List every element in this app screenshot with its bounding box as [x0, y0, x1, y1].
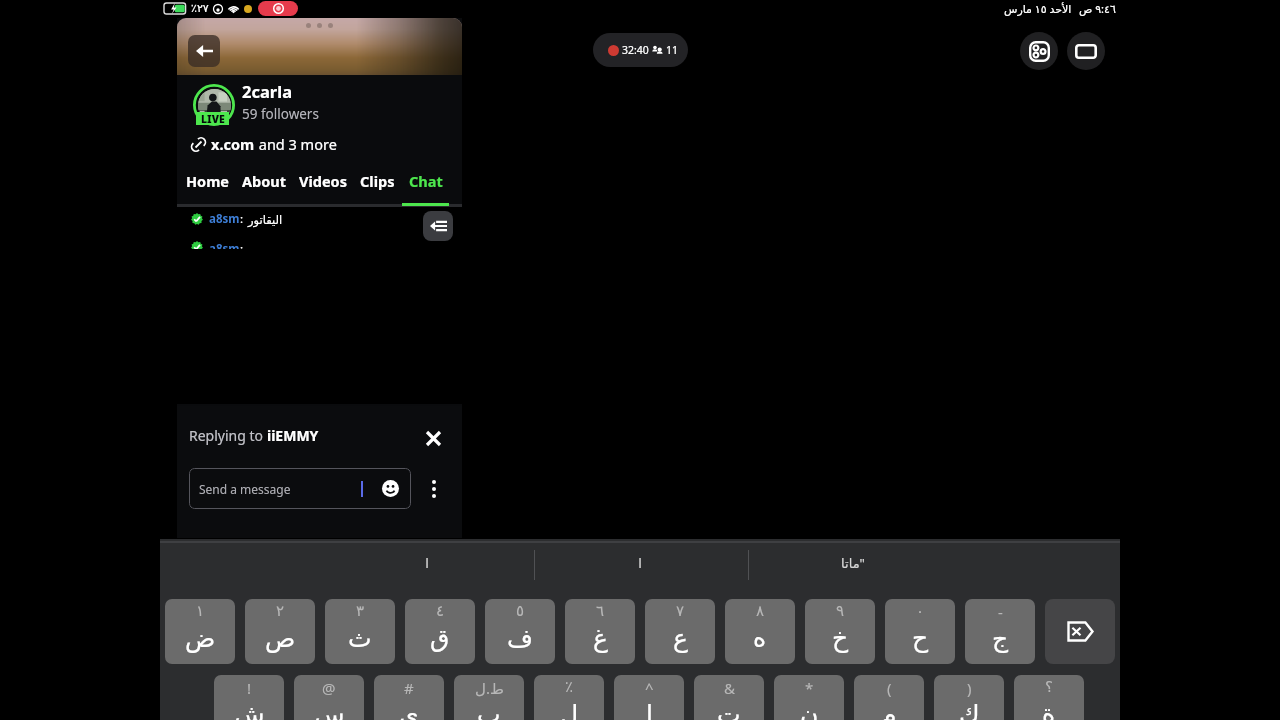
staticText: ٨ [756, 602, 765, 619]
staticText: ٥ [516, 602, 525, 619]
button[interactable]: ١ [165, 599, 235, 664]
staticText: 59 followers [242, 105, 319, 123]
staticText: ( [887, 678, 892, 698]
button[interactable]: ٨ [725, 599, 795, 664]
staticText: ن [800, 700, 819, 720]
staticText: ط.ل [475, 678, 504, 698]
staticText: a8sm [209, 211, 240, 227]
button[interactable]: ط.ل [454, 675, 524, 720]
staticText: ش [234, 700, 265, 720]
staticText: ١ [196, 602, 205, 619]
staticText: ٧ [676, 602, 685, 619]
staticText: ٣ [356, 602, 365, 619]
staticText: 2carla [242, 80, 293, 102]
button[interactable]: ٩ [805, 599, 875, 664]
button[interactable]: ٤ [405, 599, 475, 664]
staticText: خ [832, 624, 849, 653]
staticText: ك [959, 700, 980, 720]
button[interactable]: Full screen [1067, 32, 1105, 70]
staticText: LIVE [201, 112, 225, 125]
staticText: * [805, 678, 814, 698]
staticText: Home [186, 171, 229, 191]
staticText: ع [673, 624, 688, 653]
button[interactable]: ٠ [885, 599, 955, 664]
staticText: : [240, 211, 244, 227]
staticText: Send a message [199, 481, 291, 497]
button[interactable]: Chat [402, 171, 449, 206]
staticText: ٩:٤٦ ص [1079, 1, 1116, 16]
staticText: 11 [666, 43, 679, 57]
staticText: ح [912, 624, 929, 653]
button[interactable]: * [774, 675, 844, 720]
button[interactable]: More options [421, 476, 447, 502]
button[interactable]: Send a message [189, 468, 411, 509]
staticText: ٪ [565, 678, 574, 695]
button[interactable]: & [694, 675, 764, 720]
button[interactable]: ٢ [245, 599, 315, 664]
button[interactable]: ماتا" [746, 546, 959, 580]
staticText: ف [507, 624, 533, 653]
button[interactable]: Home [180, 171, 235, 206]
staticText: ٩ [836, 602, 845, 619]
button[interactable]: @ [294, 675, 364, 720]
button[interactable]: ) [934, 675, 1004, 720]
button[interactable]: ا [321, 546, 533, 580]
staticText: ماتا" [841, 554, 865, 572]
staticText: : [240, 241, 244, 249]
staticText: ة [1042, 700, 1056, 720]
button[interactable]: Clips [353, 171, 402, 206]
button[interactable]: Videos [292, 171, 353, 206]
staticText: ب [477, 700, 501, 720]
staticText: اليقاتور [248, 213, 283, 226]
staticText: ه [753, 624, 767, 653]
staticText: س [314, 700, 345, 720]
button[interactable]: ٦ [565, 599, 635, 664]
staticText: ا [646, 700, 653, 720]
staticText: ا [638, 556, 642, 571]
button[interactable]: Back [188, 35, 220, 67]
staticText: Chat [409, 171, 443, 191]
button[interactable]: ؟ [1014, 675, 1084, 720]
button[interactable]: ( [854, 675, 924, 720]
staticText: # [404, 678, 414, 698]
staticText: & [724, 678, 735, 698]
staticText: ؟ [1045, 678, 1053, 695]
button[interactable]: ^ [614, 675, 684, 720]
button[interactable]: - [965, 599, 1035, 664]
button[interactable]: ! [214, 675, 284, 720]
staticText: ) [967, 678, 972, 698]
button[interactable]: ٣ [325, 599, 395, 664]
button[interactable]: Multi window [1020, 32, 1058, 70]
staticText: ث [348, 624, 372, 653]
staticText: ^ [645, 678, 654, 698]
staticText: and 3 more [255, 134, 337, 154]
staticText: ٢ [276, 602, 285, 619]
staticText: ٦ [596, 602, 605, 619]
staticText: ٤ [436, 602, 445, 619]
staticText: غ [593, 624, 608, 653]
button[interactable]: ٧ [645, 599, 715, 664]
staticText: Videos [299, 171, 347, 191]
staticText: ل [560, 700, 579, 720]
button[interactable]: 32:40 [593, 33, 688, 67]
staticText: ق [430, 624, 450, 653]
button[interactable]: ٪ [534, 675, 604, 720]
staticText: iiEMMY [267, 426, 319, 445]
staticText: ي [399, 700, 419, 720]
staticText: ٪٢٧ [191, 2, 209, 15]
staticText: م [881, 700, 897, 720]
button[interactable]: About [235, 171, 292, 206]
staticText: ٠ [916, 602, 925, 619]
staticText: الأحد ١٥ مارس [1004, 1, 1072, 16]
staticText: x.com [211, 134, 255, 154]
button[interactable]: ا [533, 546, 746, 580]
staticText: ! [247, 678, 252, 698]
staticText: - [998, 602, 1003, 622]
button[interactable]: ٥ [485, 599, 555, 664]
button[interactable]: Backspace [1045, 599, 1115, 664]
staticText: Replying to [189, 426, 267, 445]
button[interactable]: # [374, 675, 444, 720]
button[interactable]: Emotes [382, 480, 399, 497]
button[interactable]: Collapse chat [423, 211, 453, 241]
button[interactable]: Close reply [421, 426, 445, 450]
